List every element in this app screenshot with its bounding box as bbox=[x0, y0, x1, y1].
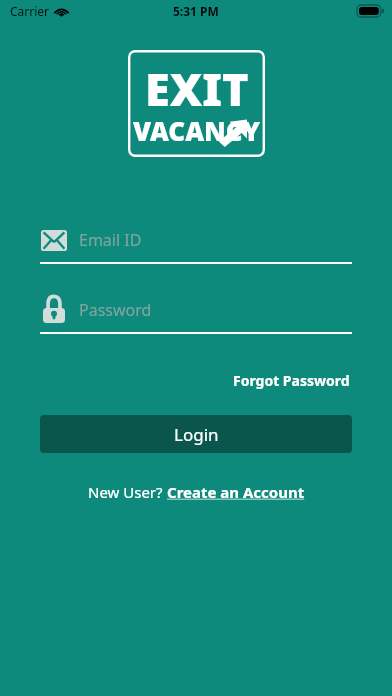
staticText: Carrier bbox=[10, 3, 50, 19]
staticText: Create an Account bbox=[167, 482, 305, 502]
staticText: Forgot Password bbox=[233, 371, 350, 390]
button[interactable]: Password bbox=[40, 294, 352, 334]
other: Password bbox=[40, 296, 68, 324]
staticText: Password bbox=[79, 299, 152, 321]
other: Email bbox=[40, 226, 68, 254]
staticText: VACANCY bbox=[133, 113, 260, 148]
staticText: Login bbox=[174, 423, 219, 446]
staticText: EXIT bbox=[145, 58, 249, 119]
staticText: New User? bbox=[88, 482, 167, 502]
staticText: 5:31 PM bbox=[173, 3, 219, 19]
button[interactable]: Forgot Password bbox=[231, 367, 352, 394]
button[interactable]: Create an Account bbox=[167, 482, 305, 502]
staticText: Email ID bbox=[79, 229, 142, 251]
button[interactable]: Login bbox=[40, 415, 352, 453]
button[interactable]: Email bbox=[40, 224, 352, 264]
